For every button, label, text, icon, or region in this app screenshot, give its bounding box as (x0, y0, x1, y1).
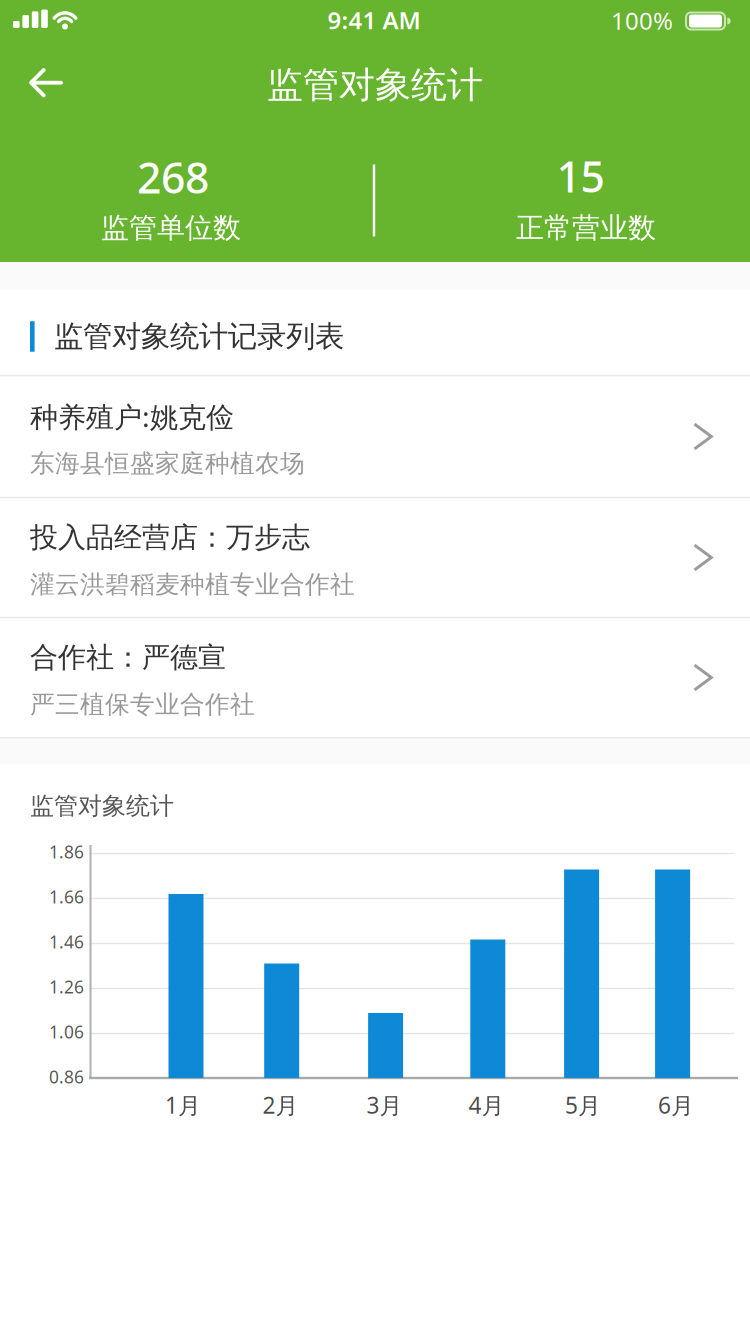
staticText: 5月 (565, 1090, 601, 1120)
staticText: 监管对象统计记录列表 (54, 318, 344, 354)
staticText: 6月 (658, 1090, 694, 1120)
staticText: 1.26 (49, 975, 84, 998)
staticText: 0.86 (49, 1065, 84, 1088)
staticText: 1.06 (49, 1020, 84, 1043)
button[interactable] (13, 51, 77, 115)
staticText: 100% (611, 5, 673, 36)
staticText: 1.66 (49, 885, 84, 908)
button[interactable]: 投入品经营店：万步志 (0, 498, 750, 617)
staticText: 投入品经营店：万步志 (30, 520, 310, 555)
staticText: 合作社：严德宣 (30, 640, 226, 675)
staticText: 监管对象统计 (30, 791, 174, 821)
staticText: 3月 (366, 1090, 402, 1120)
staticText: 正常营业数 (516, 211, 656, 245)
staticText: 2月 (262, 1090, 298, 1120)
button[interactable]: 种养殖户:姚克俭 (0, 376, 750, 497)
staticText: 1月 (165, 1090, 201, 1120)
staticText: 监管对象统计 (267, 63, 483, 107)
staticText: 灌云洪碧稻麦种植专业合作社 (30, 569, 355, 600)
button[interactable]: 合作社：严德宣 (0, 618, 750, 737)
staticText: 东海县恒盛家庭种植农场 (30, 448, 305, 479)
staticText: 1.46 (49, 930, 84, 953)
staticText: 1.86 (49, 840, 84, 863)
staticText: 种养殖户:姚克俭 (30, 397, 234, 435)
staticText: 监管单位数 (101, 211, 241, 245)
staticText: 15 (556, 148, 604, 204)
staticText: 268 (137, 149, 209, 205)
staticText: 4月 (468, 1090, 504, 1120)
staticText: 严三植保专业合作社 (30, 689, 255, 720)
staticText: 9:41 AM (327, 4, 420, 36)
